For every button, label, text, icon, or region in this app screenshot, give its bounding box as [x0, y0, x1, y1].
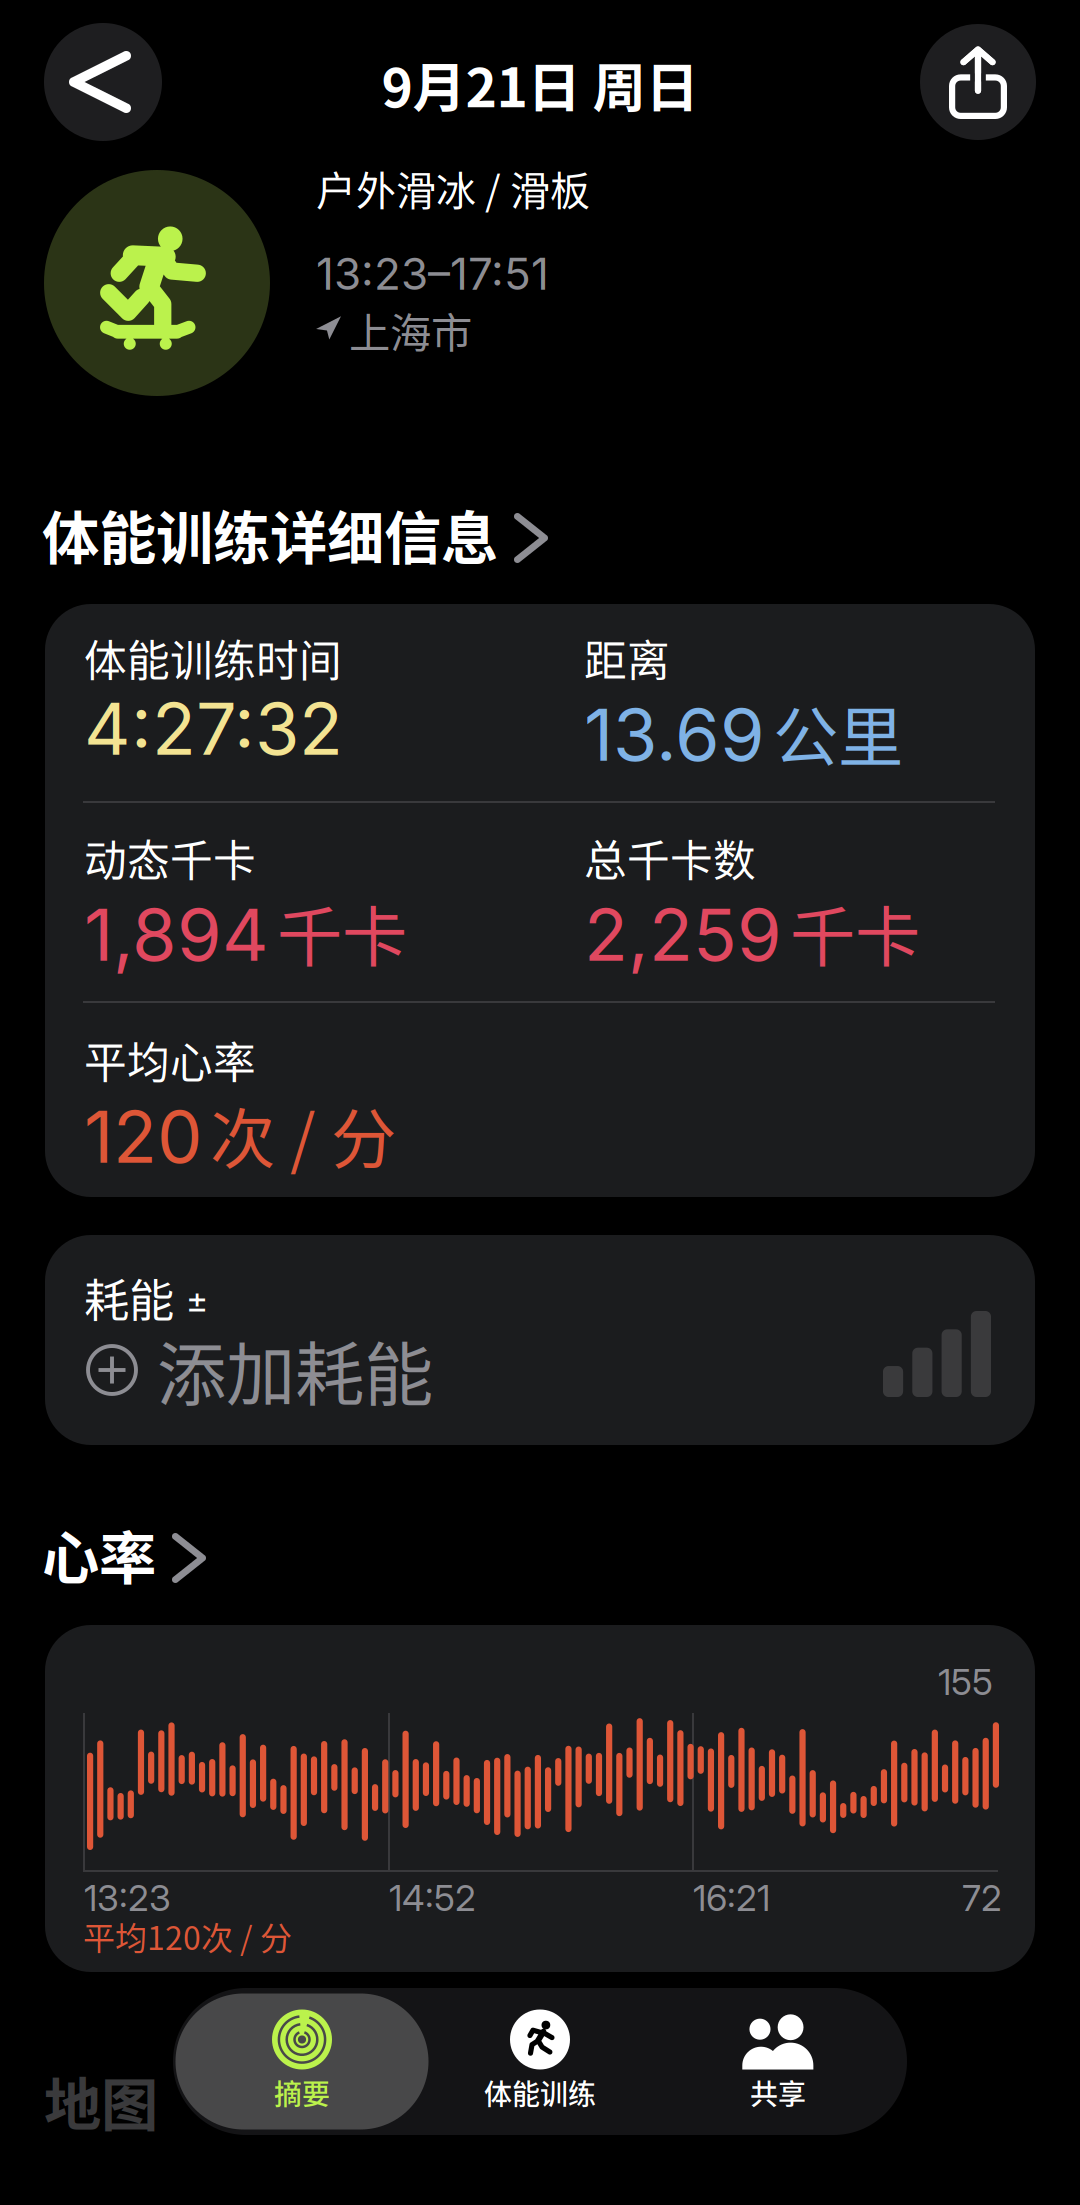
staticText: 动态千卡: [84, 827, 256, 889]
button[interactable]: 体能训练: [421, 1993, 659, 2129]
staticText: 155: [938, 1660, 993, 1704]
staticText: 4:27:32: [84, 685, 343, 772]
button[interactable]: Back: [44, 23, 162, 141]
staticText: 千卡: [790, 885, 920, 980]
staticText: 户外滑冰 / 滑板: [316, 159, 590, 217]
staticText: 1,894: [84, 891, 269, 978]
button[interactable]: 摘要: [183, 1993, 421, 2129]
staticText: 13.69: [584, 691, 765, 778]
staticText: ±: [186, 1279, 208, 1321]
staticText: 120: [84, 1093, 202, 1180]
staticText: 共享: [750, 2072, 806, 2113]
staticText: 次 / 分: [210, 1087, 396, 1182]
staticText: 体能训练详细信息: [42, 492, 498, 575]
button[interactable]: Share: [920, 24, 1036, 140]
staticText: 上海市: [349, 300, 472, 360]
staticText: 体能训练: [484, 2072, 596, 2113]
staticText: 13:23–17:51: [316, 247, 549, 300]
button[interactable]: 心率: [42, 1520, 1032, 1588]
staticText: 平均120次 / 分: [83, 1913, 292, 1959]
staticText: 摘要: [274, 2072, 330, 2113]
staticText: 72: [962, 1876, 1002, 1920]
staticText: 14:52: [389, 1876, 476, 1920]
staticText: 体能训练时间: [84, 627, 342, 689]
button[interactable]: 添加耗能: [85, 1335, 433, 1405]
button[interactable]: 共享: [659, 1993, 897, 2129]
staticText: 平均心率: [84, 1029, 256, 1091]
staticText: 添加耗能: [157, 1320, 433, 1420]
staticText: 2,259: [584, 891, 782, 978]
staticText: 9月21日 周日: [381, 45, 698, 123]
staticText: 耗能: [84, 1265, 174, 1331]
staticText: 公里: [773, 685, 903, 780]
staticText: 地图: [44, 2059, 158, 2142]
staticText: 距离: [584, 627, 670, 689]
staticText: 千卡: [277, 885, 407, 980]
staticText: 16:21: [693, 1876, 770, 1920]
staticText: 13:23: [84, 1876, 171, 1920]
button[interactable]: 体能训练详细信息: [42, 500, 1032, 568]
staticText: 心率: [42, 1512, 156, 1595]
staticText: 总千卡数: [584, 827, 756, 889]
